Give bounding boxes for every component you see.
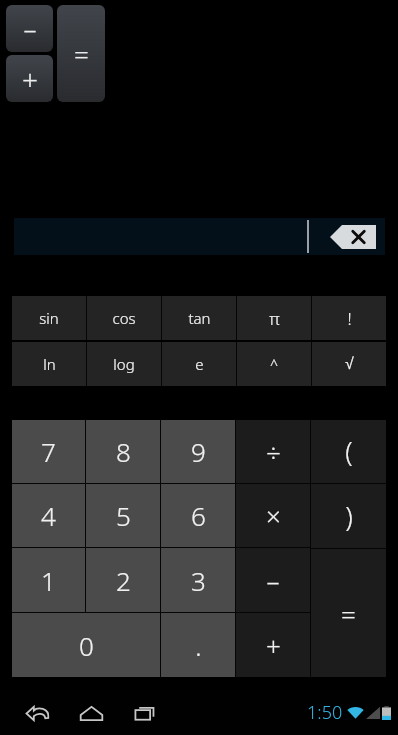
- staticText: =: [341, 596, 356, 631]
- staticText: !: [347, 307, 352, 330]
- staticText: ÷: [266, 434, 281, 469]
- staticText: log: [113, 354, 135, 374]
- staticText: 9: [191, 434, 206, 469]
- button[interactable]: ^: [237, 342, 311, 386]
- button[interactable]: ÷: [236, 420, 310, 483]
- button[interactable]: 1: [12, 548, 85, 612]
- button[interactable]: 7: [12, 420, 85, 483]
- staticText: cos: [112, 308, 136, 328]
- staticText: 8: [116, 434, 131, 469]
- staticText: tan: [188, 308, 211, 328]
- staticText: 2: [116, 563, 131, 598]
- button[interactable]: 2: [86, 548, 160, 612]
- button[interactable]: √: [312, 342, 386, 386]
- staticText: =: [74, 36, 89, 71]
- staticText: +: [22, 60, 38, 98]
- staticText: 6: [191, 498, 206, 533]
- button[interactable]: log: [87, 342, 161, 386]
- staticText: sin: [39, 308, 59, 328]
- staticText: (: [345, 433, 353, 470]
- staticText: e: [195, 354, 204, 374]
- staticText: 1:50: [307, 700, 343, 725]
- button[interactable]: –: [236, 548, 310, 612]
- staticText: ln: [43, 354, 56, 374]
- button[interactable]: =: [57, 5, 105, 102]
- button[interactable]: 0: [12, 613, 160, 677]
- button[interactable]: Backspace: [320, 218, 385, 255]
- button[interactable]: 3: [161, 548, 235, 612]
- button[interactable]: Back: [10, 692, 64, 734]
- staticText: π: [269, 307, 280, 330]
- staticText: ^: [270, 355, 278, 374]
- button[interactable]: ln: [12, 342, 86, 386]
- staticText: 1: [41, 563, 56, 598]
- staticText: 3: [191, 563, 206, 598]
- button[interactable]: 5: [86, 484, 160, 547]
- button[interactable]: ×: [236, 484, 310, 547]
- staticText: +: [266, 628, 281, 663]
- button[interactable]: –: [6, 5, 53, 52]
- button[interactable]: cos: [87, 296, 161, 340]
- button[interactable]: sin: [12, 296, 86, 340]
- staticText: ×: [266, 498, 281, 533]
- button[interactable]: (: [311, 420, 386, 483]
- button[interactable]: !: [312, 296, 386, 340]
- button[interactable]: 8: [86, 420, 160, 483]
- button[interactable]: +: [6, 55, 53, 102]
- staticText: –: [266, 563, 280, 598]
- button[interactable]: +: [236, 613, 310, 677]
- staticText: 4: [41, 498, 56, 533]
- staticText: √: [345, 355, 354, 373]
- button[interactable]: π: [237, 296, 311, 340]
- button[interactable]: =: [311, 549, 386, 677]
- button[interactable]: ): [311, 484, 386, 548]
- button[interactable]: e: [162, 342, 236, 386]
- button[interactable]: 4: [12, 484, 85, 547]
- button[interactable]: 6: [161, 484, 235, 547]
- staticText: 7: [41, 434, 56, 469]
- staticText: –: [23, 11, 37, 46]
- button[interactable]: .: [161, 613, 235, 677]
- button[interactable]: tan: [162, 296, 236, 340]
- staticText: 5: [116, 498, 131, 533]
- button[interactable]: Home: [64, 692, 118, 734]
- staticText: .: [195, 628, 202, 663]
- staticText: ): [345, 498, 353, 535]
- staticText: 0: [79, 628, 94, 663]
- button[interactable]: 9: [161, 420, 235, 483]
- button[interactable]: Recent apps: [118, 692, 172, 734]
